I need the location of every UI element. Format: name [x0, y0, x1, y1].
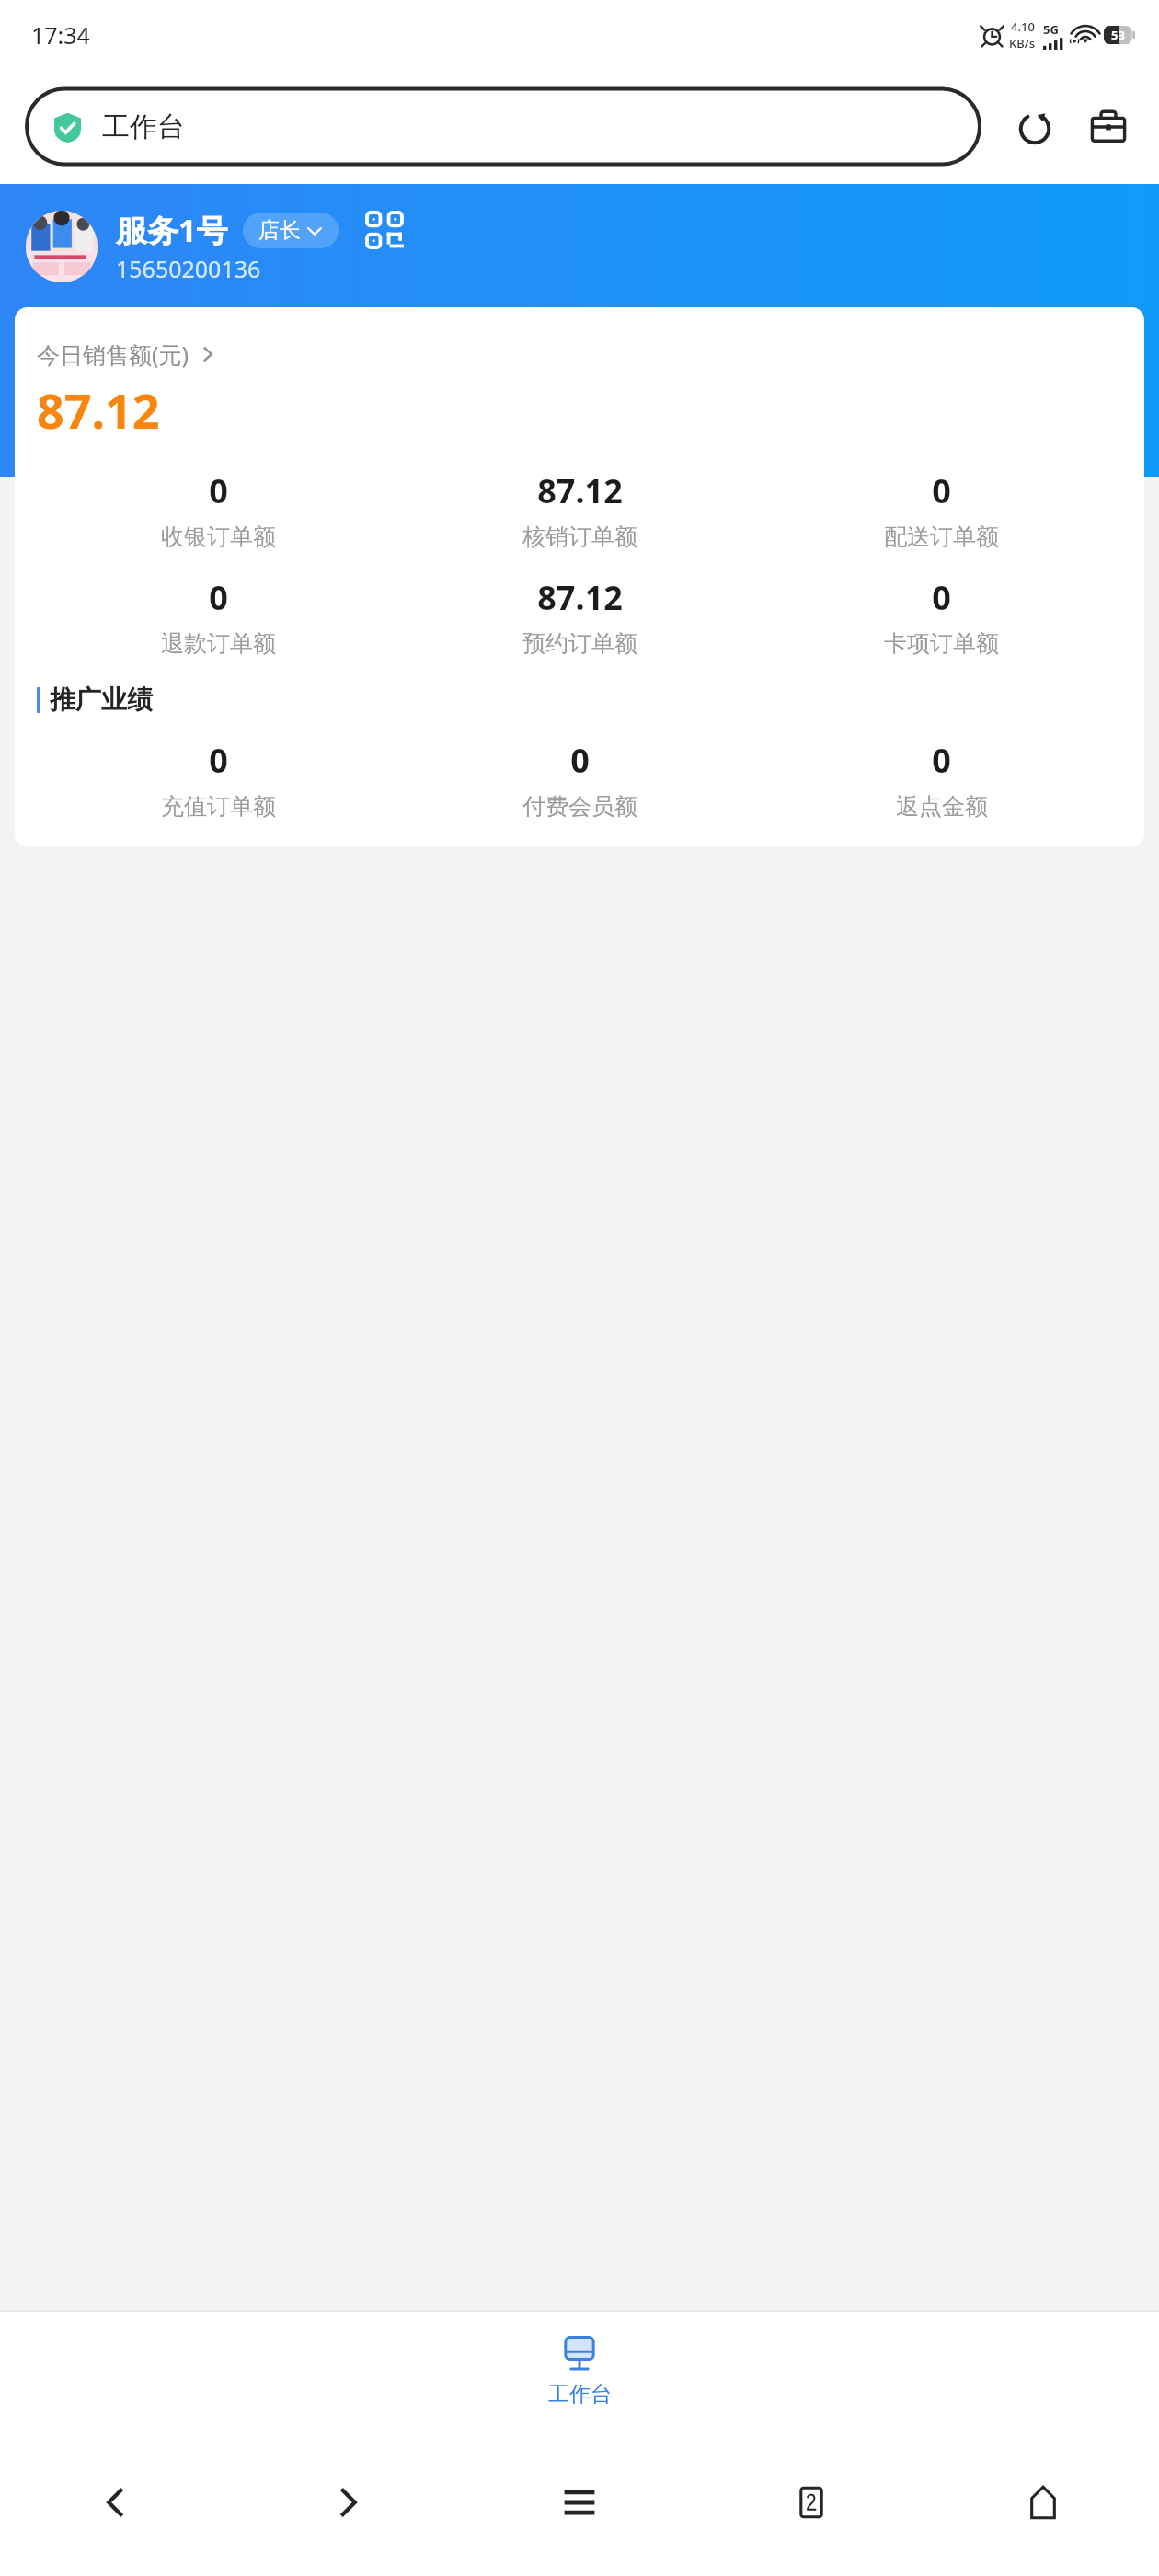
button[interactable]: 0: [37, 738, 399, 821]
button[interactable]: 今日销售额(元): [15, 307, 1144, 846]
button[interactable]: 87.12: [399, 468, 761, 551]
button[interactable]: 87.12: [399, 575, 761, 658]
button[interactable]: Home: [927, 2429, 1159, 2576]
staticText: 配送订单额: [884, 523, 999, 551]
staticText: 工作台: [102, 109, 185, 144]
button[interactable]: Refresh: [1006, 98, 1063, 155]
staticText: 0: [932, 468, 951, 513]
button[interactable]: 0: [761, 738, 1122, 821]
button[interactable]: 0: [761, 575, 1122, 658]
staticText: 工作台: [548, 2381, 612, 2408]
button[interactable]: Avatar: [26, 211, 98, 282]
button[interactable]: 工作台: [488, 2311, 671, 2429]
staticText: 服务1号: [116, 209, 228, 251]
staticText: 付费会员额: [522, 792, 637, 821]
staticText: 87.12: [537, 468, 623, 513]
staticText: 预约订单额: [522, 629, 637, 658]
button[interactable]: 工作台: [27, 89, 984, 165]
staticText: 店长: [258, 217, 301, 244]
staticText: 87.12: [37, 377, 160, 443]
button[interactable]: Forward: [232, 2429, 464, 2576]
staticText: 0: [932, 575, 951, 620]
staticText: 推广业绩: [50, 684, 153, 716]
button[interactable]: 0: [761, 468, 1122, 551]
staticText: 卡项订单额: [884, 629, 999, 658]
staticText: 今日销售额(元): [37, 339, 189, 370]
button[interactable]: 0: [37, 575, 399, 658]
staticText: 0: [932, 738, 951, 783]
staticText: 53: [1111, 27, 1125, 43]
staticText: 返点金额: [896, 792, 988, 821]
staticText: 0: [209, 575, 228, 620]
button[interactable]: QR code: [364, 210, 405, 250]
staticText: 15650200136: [116, 253, 261, 284]
button[interactable]: 店长: [243, 213, 339, 248]
staticText: 收银订单额: [161, 523, 276, 551]
button[interactable]: 0: [399, 738, 761, 821]
staticText: 5G: [1043, 21, 1059, 38]
staticText: 87.12: [537, 575, 623, 620]
staticText: 充值订单额: [161, 792, 276, 821]
button[interactable]: Toolbox: [1080, 98, 1137, 155]
staticText: 0: [570, 738, 590, 783]
staticText: 0: [209, 738, 228, 783]
staticText: 0: [209, 468, 228, 513]
staticText: KB/s: [1009, 35, 1036, 52]
button[interactable]: Back: [0, 2429, 232, 2576]
staticText: 退款订单额: [161, 629, 276, 658]
button[interactable]: 0: [37, 468, 399, 551]
button[interactable]: 今日销售额(元): [37, 339, 217, 370]
staticText: 4.10: [1011, 18, 1035, 35]
button[interactable]: Menu: [464, 2429, 695, 2576]
staticText: 核销订单额: [522, 523, 637, 551]
button[interactable]: Tabs: [695, 2429, 927, 2576]
staticText: 17:34: [31, 19, 90, 51]
